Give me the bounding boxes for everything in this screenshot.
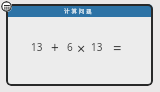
staticText: 6 — [67, 40, 73, 54]
button[interactable]: 计算问题 — [6, 4, 153, 86]
button[interactable]: App icon — [1, 1, 12, 12]
staticText: × — [77, 38, 86, 58]
staticText: 13 — [31, 40, 43, 54]
staticText: + — [51, 39, 59, 57]
staticText: = — [113, 37, 122, 57]
staticText: 13 — [91, 40, 103, 54]
staticText: 计算问题 — [64, 8, 94, 15]
